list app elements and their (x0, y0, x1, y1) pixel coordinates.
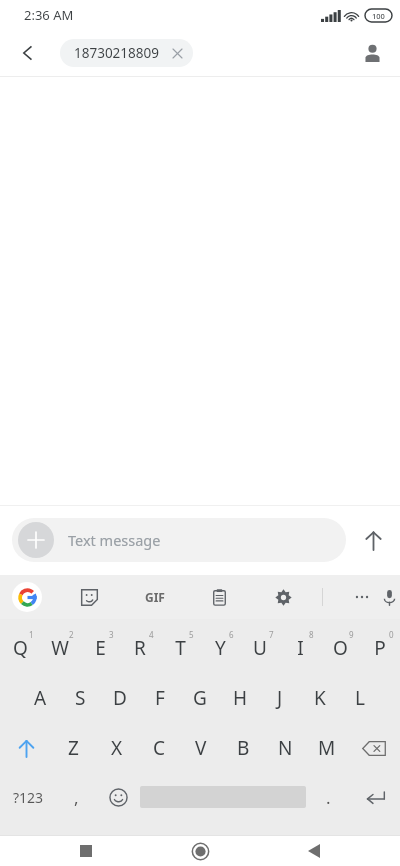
button[interactable]: B (222, 723, 264, 773)
button[interactable]: H (220, 673, 260, 723)
button[interactable]: X (95, 723, 138, 773)
button[interactable]: K (300, 673, 340, 723)
staticText: 18730218809 (74, 44, 159, 62)
button[interactable]: O (320, 623, 360, 673)
button[interactable]: Back (8, 33, 48, 73)
staticText: , (74, 786, 79, 809)
staticText: Text message (68, 530, 161, 550)
button[interactable]: More options (345, 580, 379, 614)
staticText: D (113, 685, 127, 711)
staticText: 2:36 AM (24, 6, 74, 24)
button[interactable]: Z (52, 723, 95, 773)
button[interactable]: Add attachment (12, 518, 346, 562)
button[interactable]: GIF (138, 580, 172, 614)
button[interactable]: Google (12, 582, 42, 612)
staticText: E (95, 635, 106, 661)
staticText: T (175, 635, 186, 661)
button[interactable]: Shift (0, 723, 52, 773)
staticText: 2 (69, 629, 74, 640)
staticText: Z (68, 735, 79, 761)
staticText: . (326, 786, 331, 809)
staticText: 4 (149, 629, 154, 640)
staticText: 6 (229, 629, 234, 640)
staticText: 7 (269, 629, 274, 640)
button[interactable]: J (260, 673, 300, 723)
button[interactable]: Y (200, 623, 240, 673)
staticText: 1 (29, 629, 34, 640)
staticText: 0 (389, 629, 394, 640)
button[interactable]: Settings (266, 580, 300, 614)
button[interactable]: M (306, 723, 348, 773)
button[interactable]: Enter (350, 773, 400, 821)
staticText: 5 (189, 629, 194, 640)
button[interactable]: Back (286, 836, 342, 866)
button[interactable]: Q (0, 623, 40, 673)
staticText: A (34, 685, 47, 711)
button[interactable]: Voice input (379, 580, 400, 614)
button[interactable]: , (56, 773, 96, 821)
button[interactable]: Home (172, 836, 228, 866)
button[interactable]: L (340, 673, 380, 723)
staticText: O (333, 635, 348, 661)
button[interactable]: Clipboard (202, 580, 236, 614)
button[interactable]: V (180, 723, 222, 773)
button[interactable]: W (40, 623, 80, 673)
button[interactable]: ?123 (0, 773, 56, 821)
staticText: 8 (309, 629, 314, 640)
staticText: X (111, 735, 123, 761)
staticText: 3 (109, 629, 114, 640)
button[interactable]: P (360, 623, 400, 673)
staticText: I (297, 635, 304, 661)
button[interactable]: U (240, 623, 280, 673)
button[interactable]: Stickers (72, 580, 106, 614)
button[interactable]: 18730218809 (60, 39, 193, 67)
staticText: Y (215, 635, 226, 661)
staticText: C (153, 735, 166, 761)
staticText: G (193, 685, 207, 711)
button[interactable]: S (60, 673, 100, 723)
staticText: U (253, 635, 267, 661)
staticText: M (318, 735, 336, 761)
staticText: 100 (372, 11, 385, 21)
staticText: ?123 (13, 788, 44, 807)
button[interactable]: Add attachment (18, 522, 54, 558)
button[interactable]: . (306, 773, 350, 821)
button[interactable]: T (160, 623, 200, 673)
staticText: P (374, 635, 386, 661)
staticText: F (155, 685, 165, 711)
button[interactable]: R (120, 623, 160, 673)
button[interactable]: E (80, 623, 120, 673)
staticText: GIF (145, 589, 165, 605)
button[interactable]: D (100, 673, 140, 723)
staticText: V (195, 735, 207, 761)
staticText: B (237, 735, 250, 761)
button[interactable]: C (138, 723, 180, 773)
button[interactable]: Remove recipient (169, 45, 185, 61)
staticText: W (51, 635, 69, 661)
button[interactable]: Send (346, 513, 400, 567)
staticText: K (314, 685, 326, 711)
staticText: J (277, 685, 283, 711)
button[interactable]: F (140, 673, 180, 723)
button[interactable]: Add contact (352, 33, 392, 73)
staticText: L (355, 685, 365, 711)
staticText: R (134, 635, 146, 661)
button[interactable]: Emoji (96, 773, 140, 821)
button[interactable]: Backspace (348, 723, 400, 773)
staticText: H (233, 685, 248, 711)
button[interactable]: A (20, 673, 60, 723)
button[interactable]: G (180, 673, 220, 723)
staticText: Q (13, 635, 28, 661)
button[interactable]: N (264, 723, 306, 773)
button[interactable]: I (280, 623, 320, 673)
staticText: S (75, 685, 86, 711)
staticText: N (278, 735, 293, 761)
button[interactable]: Recents (58, 836, 114, 866)
staticText: 9 (349, 629, 354, 640)
